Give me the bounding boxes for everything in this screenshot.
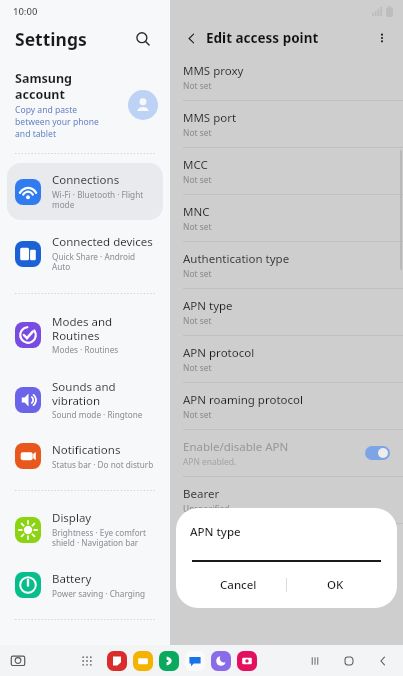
staticText: Authentication type — [183, 251, 290, 267]
staticText: Status bar · Do not disturb — [52, 459, 154, 470]
button[interactable]: All apps — [77, 651, 97, 671]
staticText: Sounds and vibration — [52, 379, 116, 408]
staticText: APN type — [190, 524, 241, 540]
button[interactable]: MMS port — [170, 101, 403, 148]
button[interactable]: OK — [287, 571, 383, 599]
button[interactable]: APN type — [170, 289, 403, 336]
staticText: Samsung account — [15, 70, 72, 102]
button[interactable]: Sounds and vibration — [7, 370, 163, 429]
staticText: Modes · Routines — [52, 344, 119, 355]
button[interactable]: Samsung account — [0, 70, 170, 140]
button[interactable]: APN roaming protocol — [170, 383, 403, 430]
staticText: Not set — [183, 127, 212, 138]
staticText: APN protocol — [183, 345, 255, 361]
staticText: Unspecified — [183, 503, 230, 514]
staticText: OK — [327, 577, 344, 593]
button[interactable]: More options — [371, 27, 393, 49]
button[interactable]: Back — [180, 27, 202, 49]
button[interactable]: Enable APN toggle — [365, 446, 390, 460]
button[interactable]: MCC — [170, 148, 403, 195]
button[interactable]: Battery — [7, 562, 163, 608]
button[interactable]: App — [133, 651, 153, 671]
staticText: Not set — [183, 268, 212, 279]
staticText: Connected devices — [52, 234, 153, 250]
staticText: Notifications — [52, 442, 121, 458]
button[interactable]: Bearer — [170, 477, 403, 524]
staticText: APN roaming protocol — [183, 392, 303, 408]
button[interactable]: Cancel — [190, 571, 286, 599]
staticText: MNC — [183, 204, 210, 220]
button[interactable]: Recent apps — [305, 651, 325, 671]
staticText: Copy and paste between your phone and ta… — [15, 104, 99, 140]
staticText: APN enabled. — [183, 456, 237, 467]
button[interactable]: Back — [373, 651, 393, 671]
staticText: Not set — [183, 221, 212, 232]
button[interactable]: MMS proxy — [170, 54, 403, 101]
staticText: Brightness · Eye comfort shield · Naviga… — [52, 527, 146, 549]
button[interactable]: App — [185, 651, 205, 671]
staticText: Connections — [52, 172, 120, 188]
staticText: Not set — [183, 409, 212, 420]
staticText: Not set — [183, 80, 212, 91]
staticText: Bearer — [183, 486, 220, 502]
staticText: Wi-Fi · Bluetooth · Flight mode — [52, 189, 144, 211]
button[interactable]: Enable/disable APN — [170, 430, 403, 477]
button[interactable]: Modes and Routines — [7, 305, 163, 364]
staticText: Sound mode · Ringtone — [52, 409, 143, 420]
staticText: Cancel — [220, 577, 257, 593]
button[interactable]: Connections — [7, 163, 163, 220]
staticText: Not set — [183, 174, 212, 185]
button[interactable]: Home — [339, 651, 359, 671]
staticText: Not set — [183, 362, 212, 373]
button[interactable]: Recents — [7, 650, 29, 672]
staticText: Settings — [15, 27, 87, 51]
button[interactable]: Authentication type — [170, 242, 403, 289]
button[interactable]: Search — [131, 27, 155, 51]
staticText: Display — [52, 510, 92, 526]
staticText: Battery — [52, 571, 92, 587]
staticText: Power saving · Charging — [52, 588, 146, 599]
button[interactable]: App — [107, 651, 127, 671]
staticText: Quick Share · Android Auto — [52, 251, 155, 273]
button[interactable]: App — [237, 651, 257, 671]
staticText: Modes and Routines — [52, 314, 155, 343]
button[interactable]: APN protocol — [170, 336, 403, 383]
staticText: APN type — [183, 298, 233, 314]
staticText: MMS port — [183, 110, 237, 126]
staticText: Edit access point — [206, 29, 319, 47]
staticText: 10:00 — [13, 5, 38, 18]
staticText: MCC — [183, 157, 208, 173]
button[interactable]: App — [211, 651, 231, 671]
button[interactable]: MNC — [170, 195, 403, 242]
staticText: MMS proxy — [183, 63, 244, 79]
button[interactable]: App — [159, 651, 179, 671]
button[interactable]: Connected devices — [7, 225, 163, 282]
button[interactable]: Display — [7, 501, 163, 558]
staticText: Not set — [183, 315, 212, 326]
staticText: Enable/disable APN — [183, 439, 289, 455]
button[interactable]: Notifications — [7, 433, 163, 479]
